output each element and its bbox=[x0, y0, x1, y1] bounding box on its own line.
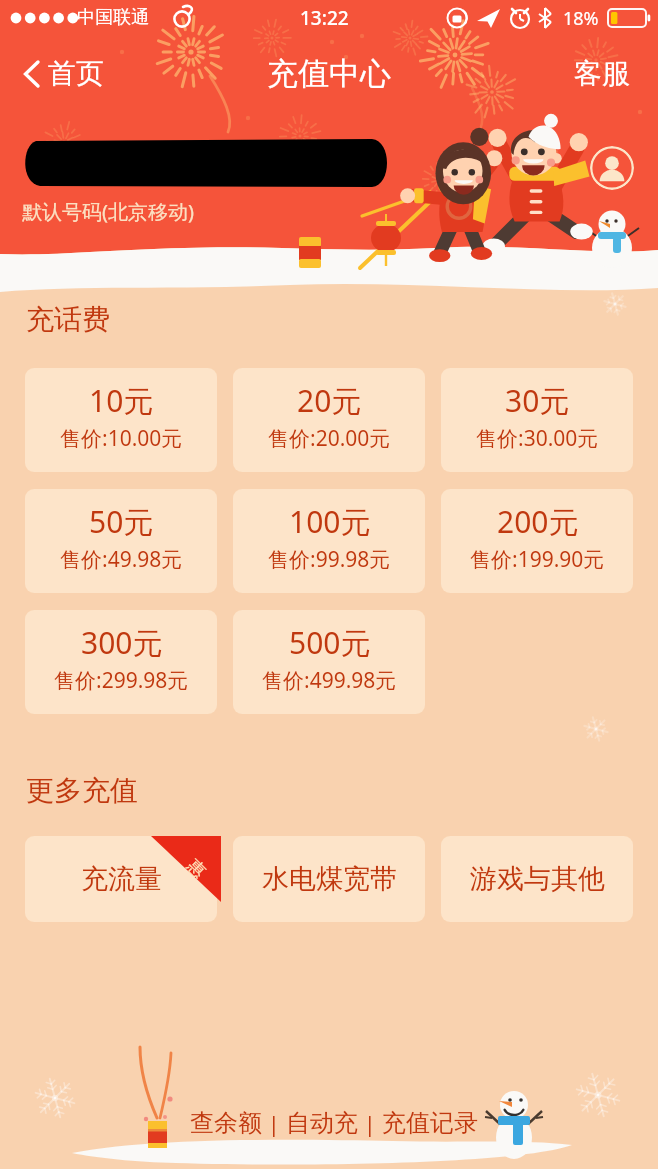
button[interactable]: 20元 bbox=[233, 368, 425, 472]
staticText: 客服 bbox=[574, 56, 630, 91]
staticText: 充流量 bbox=[81, 862, 162, 896]
staticText: 游戏与其他 bbox=[470, 862, 605, 896]
staticText: 售价:499.98元 bbox=[262, 666, 397, 695]
button[interactable]: 50元 bbox=[25, 489, 217, 593]
button[interactable]: 30元 bbox=[441, 368, 633, 472]
staticText: 中国联通 bbox=[77, 6, 149, 29]
staticText: 售价:10.00元 bbox=[60, 424, 183, 453]
staticText: 售价:49.98元 bbox=[60, 545, 183, 574]
staticText: | bbox=[262, 1108, 286, 1138]
staticText: 100元 bbox=[289, 501, 371, 542]
button[interactable]: 200元 bbox=[441, 489, 633, 593]
staticText: 默认号码(北京移动) bbox=[22, 198, 194, 225]
staticText: 充值中心 bbox=[267, 54, 391, 93]
staticText: 售价:99.98元 bbox=[268, 545, 391, 574]
staticText: 售价:299.98元 bbox=[54, 666, 189, 695]
button[interactable]: 首页 bbox=[20, 48, 108, 99]
button[interactable]: 300元 bbox=[25, 610, 217, 714]
staticText: 售价:20.00元 bbox=[268, 424, 391, 453]
button[interactable]: 游戏与其他 bbox=[441, 836, 633, 922]
button[interactable]: Account bbox=[590, 146, 634, 190]
staticText: 300元 bbox=[81, 622, 163, 663]
staticText: | bbox=[358, 1108, 382, 1138]
button[interactable]: 水电煤宽带 bbox=[233, 836, 425, 922]
staticText: 13:22 bbox=[300, 5, 349, 31]
staticText: 20元 bbox=[297, 380, 362, 421]
staticText: 首页 bbox=[48, 56, 104, 91]
button[interactable]: 500元 bbox=[233, 610, 425, 714]
staticText: 50元 bbox=[89, 501, 154, 542]
staticText: 水电煤宽带 bbox=[262, 862, 397, 896]
staticText: 18% bbox=[563, 6, 599, 31]
button[interactable]: 自动充 bbox=[286, 1108, 358, 1138]
button[interactable]: 查余额 bbox=[190, 1108, 262, 1138]
staticText: 500元 bbox=[289, 622, 371, 663]
button[interactable]: 充值记录 bbox=[382, 1108, 478, 1138]
button[interactable]: 充流量 bbox=[25, 836, 217, 922]
button[interactable]: 客服 bbox=[564, 50, 658, 97]
staticText: 30元 bbox=[505, 380, 570, 421]
staticText: 充话费 bbox=[26, 302, 110, 337]
button[interactable]: 10元 bbox=[25, 368, 217, 472]
staticText: 惠 bbox=[183, 855, 210, 882]
staticText: 10元 bbox=[89, 380, 154, 421]
staticText: 更多充值 bbox=[26, 773, 138, 808]
staticText: 200元 bbox=[497, 501, 579, 542]
staticText: 售价:199.90元 bbox=[470, 545, 605, 574]
staticText: 售价:30.00元 bbox=[476, 424, 599, 453]
button[interactable]: 100元 bbox=[233, 489, 425, 593]
